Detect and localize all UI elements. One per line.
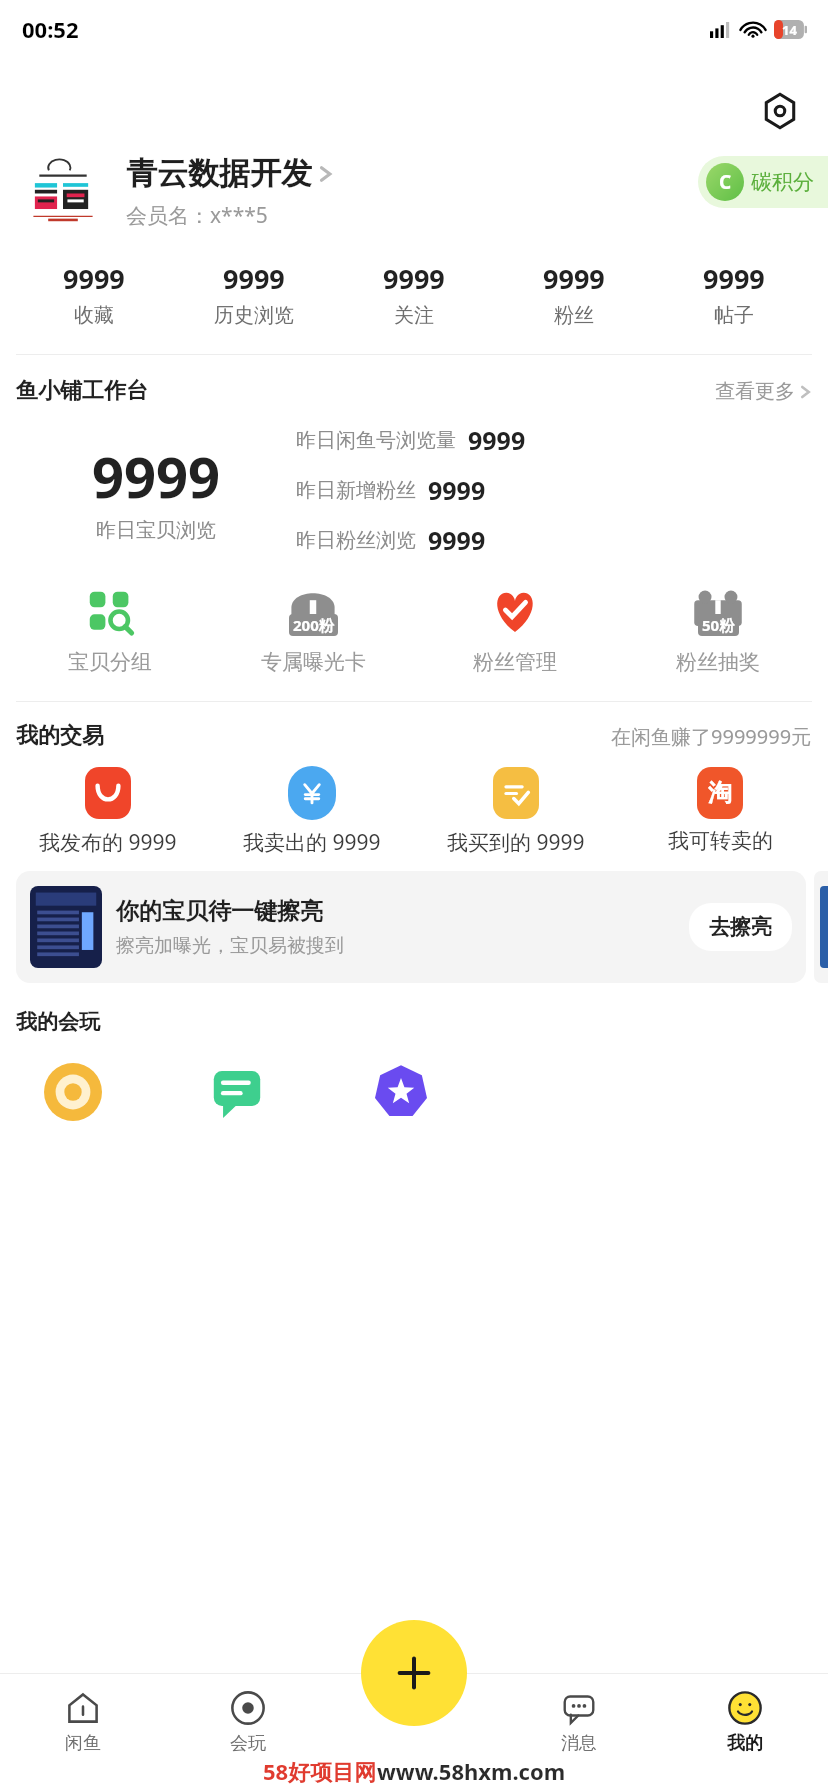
button[interactable]: 昨日闲鱼号浏览量 bbox=[296, 423, 812, 457]
staticText: 昨日粉丝浏览 bbox=[296, 528, 416, 553]
button[interactable]: Coin bbox=[30, 1049, 116, 1135]
staticText: 昨日新增粉丝 bbox=[296, 478, 416, 503]
staticText: 9999 bbox=[428, 523, 486, 557]
button[interactable]: 去擦亮 bbox=[689, 903, 792, 951]
button[interactable]: 9999 bbox=[494, 258, 654, 330]
staticText: 我发布的 9999 bbox=[39, 828, 177, 857]
staticText: 9999 bbox=[543, 260, 605, 297]
button[interactable]: 我卖出的 9999 bbox=[212, 766, 412, 857]
staticText: 昨日宝贝浏览 bbox=[96, 518, 216, 543]
button[interactable]: 9999 bbox=[174, 258, 334, 330]
staticText: 9999 bbox=[223, 260, 285, 297]
staticText: 在闲鱼赚了9999999元 bbox=[611, 723, 812, 750]
staticText: 消息 bbox=[561, 1732, 597, 1755]
button[interactable]: 查看更多 bbox=[715, 379, 812, 404]
staticText: 碳积分 bbox=[751, 169, 814, 195]
staticText: 关注 bbox=[394, 303, 434, 328]
staticText: 淘 bbox=[708, 778, 732, 808]
staticText: 昨日闲鱼号浏览量 bbox=[296, 428, 456, 453]
staticText: 宝贝分组 bbox=[68, 649, 152, 675]
button[interactable]: 青云数据开发 bbox=[126, 154, 334, 193]
staticText: www.58hxm.com bbox=[377, 1756, 566, 1786]
button[interactable]: 9999 bbox=[334, 258, 494, 330]
staticText: 9999 bbox=[63, 260, 125, 297]
staticText: 闲鱼 bbox=[65, 1732, 101, 1755]
staticText: 查看更多 bbox=[715, 379, 795, 404]
staticText: 我的 bbox=[727, 1732, 763, 1755]
button[interactable]: 粉丝管理 bbox=[415, 579, 615, 677]
button[interactable]: 9999 bbox=[654, 258, 814, 330]
button[interactable]: 宝贝分组 bbox=[10, 579, 210, 677]
button[interactable]: 在闲鱼赚了9999999元 bbox=[611, 723, 812, 750]
staticText: 我卖出的 9999 bbox=[243, 828, 381, 857]
staticText: 我买到的 9999 bbox=[447, 828, 585, 857]
staticText: 9999 bbox=[92, 438, 221, 514]
staticText: 青云数据开发 bbox=[126, 154, 312, 193]
staticText: 历史浏览 bbox=[214, 303, 294, 328]
button[interactable]: 昨日粉丝浏览 bbox=[296, 523, 812, 557]
button[interactable]: 昨日新增粉丝 bbox=[296, 473, 812, 507]
staticText: 会员名：x***5 bbox=[126, 201, 268, 230]
button[interactable]: 我的 bbox=[662, 1674, 828, 1792]
staticText: 我可转卖的 bbox=[668, 828, 773, 854]
button[interactable]: 会玩 bbox=[165, 1674, 330, 1792]
staticText: 收藏 bbox=[74, 303, 114, 328]
button[interactable]: 我买到的 9999 bbox=[416, 766, 616, 857]
staticText: 200粉 bbox=[293, 615, 334, 635]
staticText: 粉丝 bbox=[554, 303, 594, 328]
button[interactable]: 淘 bbox=[620, 766, 820, 854]
button[interactable] bbox=[814, 871, 828, 983]
button[interactable]: 消息 bbox=[496, 1674, 662, 1792]
button[interactable]: Publish bbox=[361, 1620, 467, 1726]
button[interactable]: Badge bbox=[358, 1049, 444, 1135]
staticText: 9999 bbox=[428, 473, 486, 507]
button[interactable]: 我发布的 9999 bbox=[8, 766, 208, 857]
button[interactable]: 200粉 bbox=[213, 579, 413, 677]
staticText: 9999 bbox=[468, 423, 526, 457]
staticText: 我的会玩 bbox=[16, 1009, 100, 1035]
staticText: 粉丝抽奖 bbox=[676, 649, 760, 675]
staticText: C bbox=[719, 169, 732, 195]
staticText: 9999 bbox=[383, 260, 445, 297]
button[interactable]: Settings bbox=[758, 89, 802, 133]
staticText: 9999 bbox=[703, 260, 765, 297]
button[interactable] bbox=[26, 155, 100, 229]
staticText: 专属曝光卡 bbox=[261, 649, 366, 675]
staticText: 帖子 bbox=[714, 303, 754, 328]
staticText: 你的宝贝待一键擦亮 bbox=[116, 897, 323, 926]
staticText: 00:52 bbox=[22, 14, 79, 44]
staticText: 去擦亮 bbox=[709, 914, 772, 940]
staticText: 58好项目网 bbox=[263, 1756, 377, 1786]
staticText: 粉丝管理 bbox=[473, 649, 557, 675]
button[interactable]: 9999 bbox=[16, 438, 296, 543]
staticText: 我的交易 bbox=[16, 722, 104, 750]
button[interactable]: C bbox=[698, 156, 828, 208]
staticText: 14 bbox=[782, 21, 797, 39]
staticText: 鱼小铺工作台 bbox=[16, 377, 148, 405]
button[interactable]: 你的宝贝待一键擦亮 bbox=[16, 871, 806, 983]
staticText: 会玩 bbox=[230, 1732, 266, 1755]
button[interactable]: 9999 bbox=[14, 258, 174, 330]
button[interactable]: 闲鱼 bbox=[0, 1674, 165, 1792]
staticText: 擦亮加曝光，宝贝易被搜到 bbox=[116, 934, 344, 958]
staticText: 50粉 bbox=[702, 615, 735, 635]
button[interactable]: 50粉 bbox=[618, 579, 818, 677]
button[interactable]: Chat bbox=[194, 1049, 280, 1135]
